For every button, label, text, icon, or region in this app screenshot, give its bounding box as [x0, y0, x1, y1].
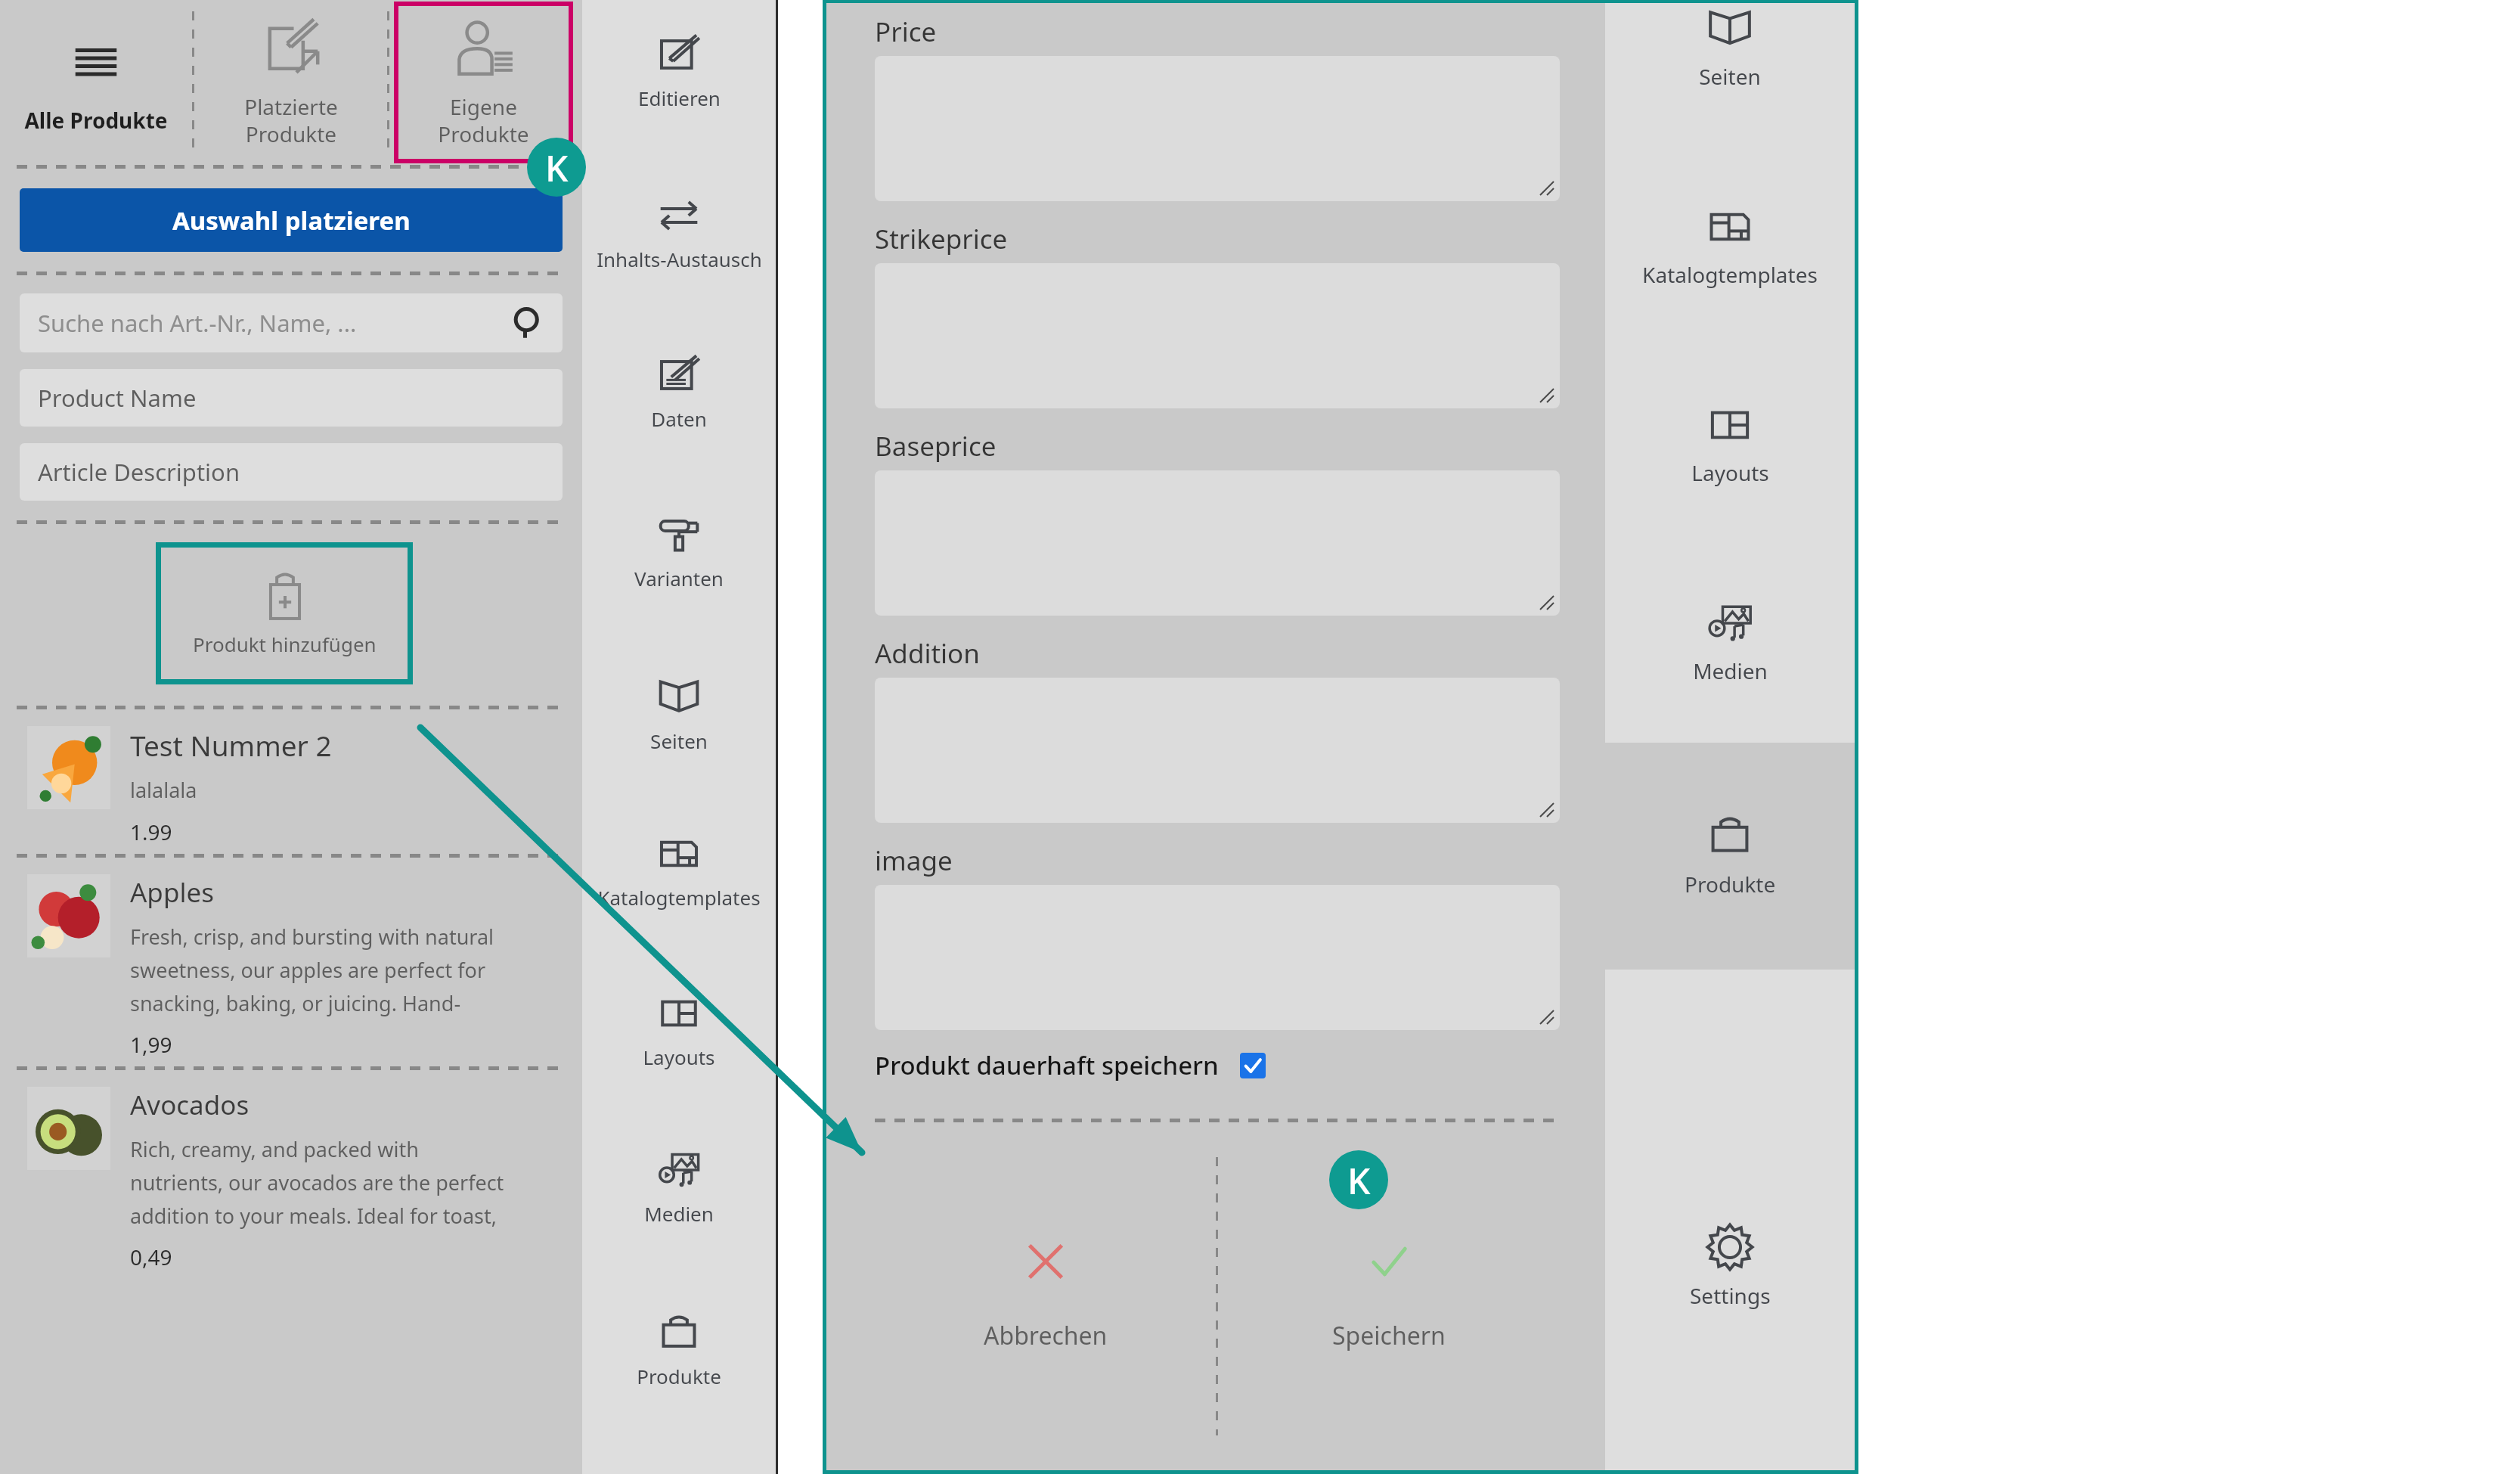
staticText: Katalogtemplates	[1642, 260, 1818, 289]
staticText: Platzierte Produkte	[244, 92, 338, 148]
button[interactable]: Medien	[582, 1070, 776, 1227]
staticText: Rich, creamy, and packed with nutrients,…	[130, 1135, 504, 1229]
button[interactable]: Suche nach Art.-Nr., Name, ...	[20, 293, 563, 352]
button[interactable]: Suchen	[511, 306, 544, 340]
staticText: Suche nach Art.-Nr., Name, ...	[38, 307, 357, 339]
staticText: Seiten	[1699, 62, 1761, 91]
button[interactable]: Seiten	[582, 591, 776, 754]
button[interactable]: Test Nummer 2	[0, 709, 582, 854]
staticText: Medien	[1693, 656, 1768, 685]
staticText: Eigene Produkte	[438, 92, 529, 148]
button[interactable]: Produkt dauerhaft speichern	[875, 1048, 1560, 1082]
button[interactable]: Speichern	[1218, 1122, 1560, 1470]
staticText: Produkt hinzufügen	[193, 631, 377, 657]
button[interactable]: Platzierte Produkte	[194, 0, 387, 165]
button[interactable]: Medien	[1605, 487, 1855, 685]
staticText: K	[1347, 1156, 1371, 1205]
staticText: Strikeprice	[875, 221, 1008, 257]
button[interactable]: Apples	[0, 858, 582, 1066]
button[interactable]: Varianten	[582, 432, 776, 591]
other: Annotation K	[527, 138, 586, 197]
button[interactable]: Produkt hinzufügen	[161, 548, 408, 679]
staticText: Inhalts-Austausch	[597, 246, 762, 272]
button[interactable]: Daten	[582, 272, 776, 432]
staticText: Layouts	[1691, 458, 1769, 487]
staticText: Layouts	[643, 1044, 715, 1070]
button[interactable]: Product Name	[20, 369, 563, 427]
button[interactable]	[875, 470, 1560, 616]
staticText: Produkte	[1685, 870, 1776, 898]
staticText: Produkte	[637, 1363, 721, 1389]
staticText: 0,49	[130, 1243, 172, 1271]
button[interactable]: Seiten	[1605, 3, 1855, 91]
staticText: image	[875, 843, 953, 879]
button[interactable]: Katalogtemplates	[1605, 91, 1855, 289]
button[interactable]: Auswahl platzieren	[20, 188, 563, 252]
staticText: Alle Produkte	[24, 106, 168, 135]
button[interactable]: Layouts	[1605, 289, 1855, 487]
button[interactable]: Alle Produkte	[0, 0, 192, 165]
button[interactable]	[875, 263, 1560, 408]
staticText: Avocados	[130, 1087, 250, 1123]
staticText: Apples	[130, 874, 214, 911]
button[interactable]: Abbrechen	[875, 1122, 1216, 1470]
button[interactable]: Avocados	[0, 1070, 582, 1279]
staticText: Baseprice	[875, 428, 997, 464]
staticText: Price	[875, 14, 937, 50]
staticText: Test Nummer 2	[130, 726, 332, 764]
staticText: Settings	[1690, 1281, 1771, 1310]
button[interactable]: Katalogtemplates	[582, 754, 776, 911]
staticText: lalalala	[130, 776, 197, 804]
staticText: Abbrechen	[984, 1319, 1108, 1352]
staticText: Editieren	[638, 85, 721, 111]
staticText: Fresh, crisp, and bursting with natural …	[130, 923, 494, 1016]
other: Annotation K	[1329, 1150, 1388, 1209]
staticText: Speichern	[1332, 1319, 1446, 1352]
staticText: 1.99	[130, 818, 172, 846]
staticText: 1,99	[130, 1030, 172, 1059]
button[interactable]: Inhalts-Austausch	[582, 111, 776, 272]
staticText: Produkt dauerhaft speichern	[875, 1048, 1219, 1082]
staticText: Varianten	[634, 565, 724, 591]
button[interactable]: Produkte	[582, 1227, 776, 1389]
staticText: Addition	[875, 635, 980, 672]
staticText: K	[545, 143, 569, 192]
staticText: Product Name	[38, 382, 197, 414]
staticText: Medien	[644, 1200, 714, 1227]
staticText: Katalogtemplates	[597, 884, 761, 911]
button[interactable]: Article Description	[20, 443, 563, 501]
button[interactable]: Eigene Produkte	[398, 6, 569, 159]
button[interactable]: Produkte	[1605, 743, 1855, 970]
staticText: Auswahl platzieren	[172, 203, 411, 237]
button[interactable]: Settings	[1605, 1219, 1855, 1310]
staticText: Daten	[651, 405, 707, 432]
button[interactable]: Layouts	[582, 911, 776, 1070]
staticText: Article Description	[38, 456, 240, 488]
button[interactable]: Editieren	[582, 0, 776, 111]
staticText: Seiten	[650, 728, 708, 754]
